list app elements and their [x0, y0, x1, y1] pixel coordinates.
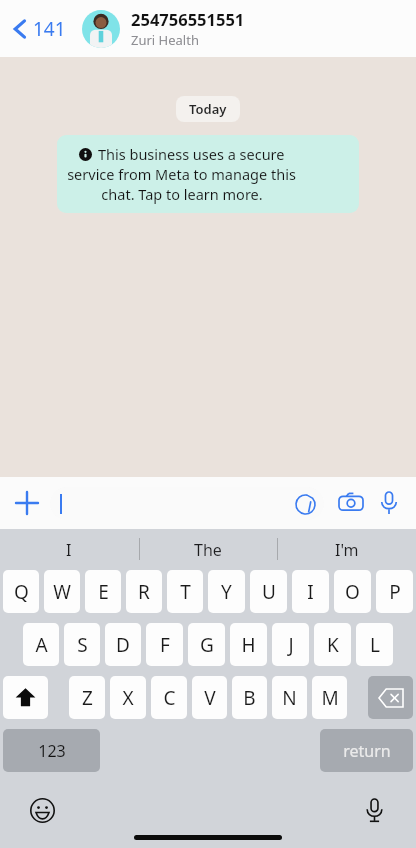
staticText: W	[53, 579, 71, 605]
button[interactable]: 254756551551	[131, 8, 416, 49]
button[interactable]: Emoji	[26, 794, 58, 826]
staticText: Y	[221, 579, 232, 605]
staticText: N	[282, 685, 297, 711]
button[interactable]: N	[272, 676, 307, 719]
staticText: F	[160, 632, 170, 658]
button[interactable]: W	[44, 570, 80, 613]
staticText: K	[327, 632, 339, 658]
staticText: Q	[14, 579, 29, 605]
staticText: T	[180, 579, 191, 605]
staticText: R	[138, 579, 150, 605]
staticText: G	[200, 632, 214, 658]
button[interactable]: G	[188, 623, 225, 666]
staticText: service from Meta to manage this	[67, 164, 296, 184]
staticText: 141	[33, 16, 66, 42]
button[interactable]: I'm	[277, 529, 416, 570]
button[interactable]: J	[272, 623, 309, 666]
staticText: X	[122, 685, 134, 711]
button[interactable]: Shift	[3, 676, 48, 719]
button[interactable]: M	[312, 676, 347, 719]
button[interactable]: T	[167, 570, 203, 613]
staticText: Z	[82, 685, 93, 711]
staticText: D	[116, 632, 130, 658]
staticText: L	[370, 632, 380, 658]
staticText: S	[77, 632, 88, 658]
staticText: Today	[189, 100, 227, 118]
button[interactable]: Contact avatar	[82, 10, 120, 48]
button[interactable]: return	[320, 729, 413, 772]
button[interactable]: V	[192, 676, 227, 719]
staticText: return	[343, 740, 391, 762]
button[interactable]: I	[292, 570, 329, 613]
button[interactable]: Today	[176, 96, 240, 122]
button[interactable]: S	[64, 623, 100, 666]
button[interactable]: F	[146, 623, 183, 666]
button[interactable]: The	[138, 529, 277, 570]
button[interactable]: Dictation	[358, 794, 390, 826]
button[interactable]: I	[0, 529, 138, 570]
button[interactable]: Voice message	[372, 486, 406, 520]
button[interactable]: Y	[208, 570, 245, 613]
button[interactable]: B	[232, 676, 267, 719]
staticText: 254756551551	[131, 8, 245, 30]
button[interactable]: This business uses a secure	[57, 135, 359, 213]
button[interactable]: H	[230, 623, 267, 666]
button[interactable]: U	[250, 570, 287, 613]
button[interactable]: X	[110, 676, 146, 719]
button[interactable]: Sticker	[50, 487, 324, 520]
button[interactable]: A	[23, 623, 59, 666]
staticText: J	[288, 632, 294, 658]
staticText: B	[243, 685, 256, 711]
button[interactable]: 123	[3, 729, 100, 772]
staticText: P	[389, 579, 401, 605]
button[interactable]: L	[356, 623, 393, 666]
button[interactable]: P	[376, 570, 413, 613]
button[interactable]: E	[85, 570, 121, 613]
staticText: Zuri Health	[131, 31, 199, 49]
button[interactable]: R	[126, 570, 162, 613]
button[interactable]: O	[334, 570, 371, 613]
other: Sticker	[292, 491, 318, 517]
button[interactable]: 141	[8, 7, 70, 51]
button[interactable]: C	[151, 676, 187, 719]
staticText: I	[307, 579, 314, 605]
staticText: A	[35, 632, 48, 658]
staticText: E	[98, 579, 109, 605]
staticText: 123	[38, 740, 66, 762]
staticText: O	[345, 579, 360, 605]
staticText: H	[241, 632, 256, 658]
staticText: U	[262, 579, 276, 605]
button[interactable]: Z	[69, 676, 105, 719]
staticText: chat. Tap to learn more.	[101, 184, 263, 204]
staticText: I'm	[335, 539, 359, 561]
button[interactable]: D	[105, 623, 141, 666]
staticText: M	[321, 685, 339, 711]
button[interactable]: Attach	[10, 486, 44, 520]
staticText: The	[194, 539, 222, 561]
button[interactable]: K	[314, 623, 351, 666]
staticText: This business uses a secure	[98, 144, 285, 164]
staticText: I	[66, 539, 72, 561]
staticText: C	[163, 685, 176, 711]
button[interactable]: Camera	[334, 486, 368, 520]
staticText: V	[204, 685, 216, 711]
button[interactable]: Q	[3, 570, 39, 613]
button[interactable]: Backspace	[368, 676, 413, 719]
